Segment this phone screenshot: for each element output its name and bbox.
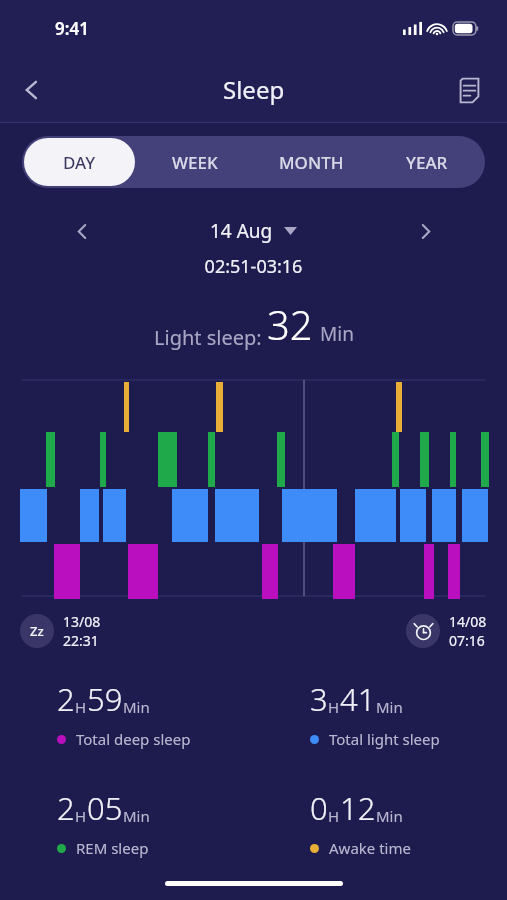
staticText: 07:16 <box>449 631 485 650</box>
staticText: H <box>75 697 87 717</box>
staticText: Awake time <box>329 838 411 858</box>
button[interactable]: Next day <box>405 214 445 248</box>
staticText: H <box>328 806 340 826</box>
staticText: Total deep sleep <box>76 729 191 749</box>
staticText: 41 <box>340 678 376 720</box>
staticText: H <box>328 697 340 717</box>
staticText: Min <box>123 806 150 826</box>
staticText: 02:51-03:16 <box>0 254 507 279</box>
staticText: Total light sleep <box>329 729 440 749</box>
button[interactable]: 2 <box>57 678 253 749</box>
button[interactable]: YEAR <box>371 138 483 186</box>
button[interactable]: DAY <box>24 138 135 186</box>
button[interactable]: Back <box>8 66 56 114</box>
button[interactable]: Previous day <box>62 214 102 248</box>
staticText: 0 <box>310 787 328 829</box>
staticText: Min <box>123 697 150 717</box>
staticText: MONTH <box>279 151 344 174</box>
staticText: 05 <box>87 787 123 829</box>
staticText: 32 <box>267 297 313 351</box>
button[interactable]: 3 <box>310 678 507 749</box>
staticText: 14/08 <box>449 612 487 631</box>
staticText: YEAR <box>406 151 448 174</box>
staticText: 59 <box>87 678 123 720</box>
staticText: 3 <box>310 678 328 720</box>
staticText: DAY <box>63 151 96 174</box>
staticText: 2 <box>57 787 75 829</box>
staticText: 9:41 <box>55 17 89 40</box>
button[interactable]: 0 <box>310 787 507 858</box>
staticText: 13/08 <box>63 612 101 631</box>
staticText: Min <box>320 321 354 347</box>
staticText: Light sleep: <box>154 324 262 351</box>
staticText: 22:31 <box>63 631 99 650</box>
staticText: WEEK <box>172 151 218 174</box>
button[interactable]: WEEK <box>139 138 251 186</box>
staticText: H <box>75 806 87 826</box>
staticText: Min <box>376 697 403 717</box>
staticText: Min <box>376 806 403 826</box>
staticText: Sleep <box>223 73 285 106</box>
staticText: REM sleep <box>76 838 149 858</box>
staticText: 14 Aug <box>210 218 273 244</box>
staticText: 12 <box>340 787 376 829</box>
button[interactable]: MONTH <box>255 138 367 186</box>
button[interactable]: Notes <box>445 66 493 114</box>
staticText: Zz <box>30 622 44 640</box>
staticText: 2 <box>57 678 75 720</box>
button[interactable]: 2 <box>57 787 253 858</box>
